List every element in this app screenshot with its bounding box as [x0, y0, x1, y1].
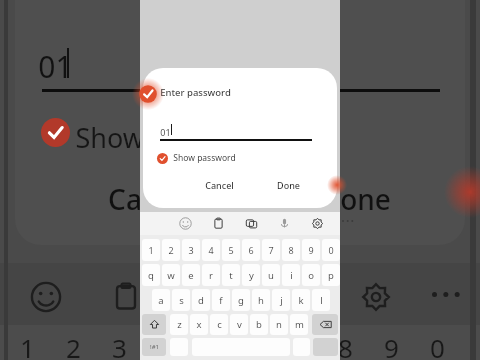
button[interactable]: c	[210, 314, 228, 335]
button[interactable]: 8	[282, 239, 300, 261]
staticText: s	[179, 294, 184, 307]
staticText: b	[256, 318, 262, 331]
button[interactable]: 0	[322, 239, 340, 261]
staticText: Enter password	[160, 86, 231, 99]
staticText: z	[177, 318, 182, 331]
button[interactable]: o	[302, 264, 320, 286]
button[interactable]: v	[230, 314, 248, 335]
staticText: m	[295, 318, 304, 331]
staticText: v	[237, 318, 242, 331]
button[interactable]: f	[212, 289, 230, 311]
staticText: Cancel	[205, 179, 234, 191]
button[interactable]: n	[270, 314, 288, 335]
button[interactable]: x	[190, 314, 208, 335]
staticText: p	[328, 269, 334, 282]
button[interactable]: 9	[302, 239, 320, 261]
button[interactable]: More options	[342, 220, 358, 228]
button[interactable]: Enter password	[143, 68, 337, 208]
staticText: n	[276, 318, 282, 331]
staticText: Show p	[75, 119, 168, 156]
button[interactable]: u	[262, 264, 280, 286]
staticText: 01	[160, 126, 171, 138]
button[interactable]: y	[242, 264, 260, 286]
staticText: o	[308, 269, 314, 282]
button[interactable]: m	[290, 314, 308, 335]
button[interactable]: i	[282, 264, 300, 286]
button[interactable]: l	[312, 289, 330, 311]
staticText: 9	[308, 244, 314, 256]
button[interactable]: 6	[242, 239, 260, 261]
button[interactable]: t	[222, 264, 240, 286]
button[interactable]: r	[202, 264, 220, 286]
button[interactable]: a	[152, 289, 170, 311]
button[interactable]: Emoji	[179, 217, 193, 231]
button[interactable]: d	[192, 289, 210, 311]
staticText: 1	[148, 244, 154, 256]
button[interactable]: Shift	[142, 314, 166, 335]
button[interactable]: p	[322, 264, 340, 286]
staticText: Ca	[108, 180, 142, 218]
staticText: i	[290, 269, 293, 282]
button[interactable]: Voice input	[278, 217, 292, 231]
button[interactable]: b	[250, 314, 268, 335]
button[interactable]: h	[252, 289, 270, 311]
button[interactable]: e	[182, 264, 200, 286]
staticText: g	[238, 294, 244, 307]
staticText: !#1	[150, 343, 159, 351]
staticText: d	[198, 294, 204, 307]
staticText: l	[320, 294, 323, 307]
button[interactable]: Cancel	[195, 173, 243, 197]
staticText: a	[158, 294, 164, 307]
staticText: 0	[430, 330, 445, 360]
button[interactable]: 5	[222, 239, 240, 261]
staticText: h	[258, 294, 264, 307]
staticText: t	[229, 269, 233, 282]
button[interactable]: k	[292, 289, 310, 311]
staticText: j	[280, 294, 283, 307]
staticText: 2	[66, 330, 81, 360]
button[interactable]: z	[170, 314, 188, 335]
button[interactable]: q	[142, 264, 160, 286]
staticText: 7	[268, 244, 274, 256]
staticText: w	[167, 269, 175, 282]
button[interactable]: 3	[182, 239, 200, 261]
button[interactable]: j	[272, 289, 290, 311]
button[interactable]: Backspace	[312, 314, 338, 335]
staticText: 3	[188, 244, 194, 256]
button[interactable]: Stickers	[245, 217, 259, 231]
button[interactable]: g	[232, 289, 250, 311]
button[interactable]: s	[172, 289, 190, 311]
staticText: 8	[288, 244, 294, 256]
button[interactable]: 2	[162, 239, 180, 261]
button[interactable]: 1	[142, 239, 160, 261]
staticText: 5	[228, 244, 234, 256]
staticText: 4	[208, 244, 214, 256]
staticText: y	[249, 269, 254, 282]
staticText: 01	[38, 46, 73, 87]
staticText: c	[217, 318, 222, 331]
staticText: f	[219, 294, 223, 307]
staticText: 6	[248, 244, 254, 256]
staticText: u	[268, 269, 274, 282]
button[interactable]: Symbols	[142, 338, 166, 356]
button[interactable]: Done	[267, 173, 309, 197]
staticText: r	[209, 269, 213, 282]
staticText: 9	[384, 330, 399, 360]
staticText: Show password	[173, 152, 236, 164]
staticText: q	[148, 269, 154, 282]
button[interactable]: Keyboard settings	[311, 217, 325, 231]
button[interactable]: 4	[202, 239, 220, 261]
staticText: k	[298, 294, 304, 307]
staticText: e	[188, 269, 194, 282]
button[interactable]: Clipboard	[212, 217, 226, 231]
button[interactable]: 7	[262, 239, 280, 261]
staticText: 2	[168, 244, 174, 256]
staticText: x	[196, 318, 202, 331]
staticText: 8	[338, 330, 353, 360]
button[interactable]: w	[162, 264, 180, 286]
button[interactable]: Show password	[157, 149, 236, 167]
